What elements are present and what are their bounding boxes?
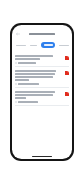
button[interactable]: Open PDF: [12, 52, 72, 66]
button[interactable]: Tab: [29, 42, 37, 48]
button[interactable]: Open PDF: [12, 88, 72, 105]
button[interactable]: Back: [15, 31, 21, 37]
button[interactable]: Open PDF: [65, 56, 69, 60]
button[interactable]: Open PDF: [65, 71, 69, 75]
button[interactable]: Open PDF: [12, 67, 72, 87]
button[interactable]: Selected tab: [41, 42, 55, 48]
button[interactable]: Open PDF: [65, 92, 69, 96]
button[interactable]: Tab: [58, 42, 69, 48]
button[interactable]: Tab: [15, 42, 26, 48]
